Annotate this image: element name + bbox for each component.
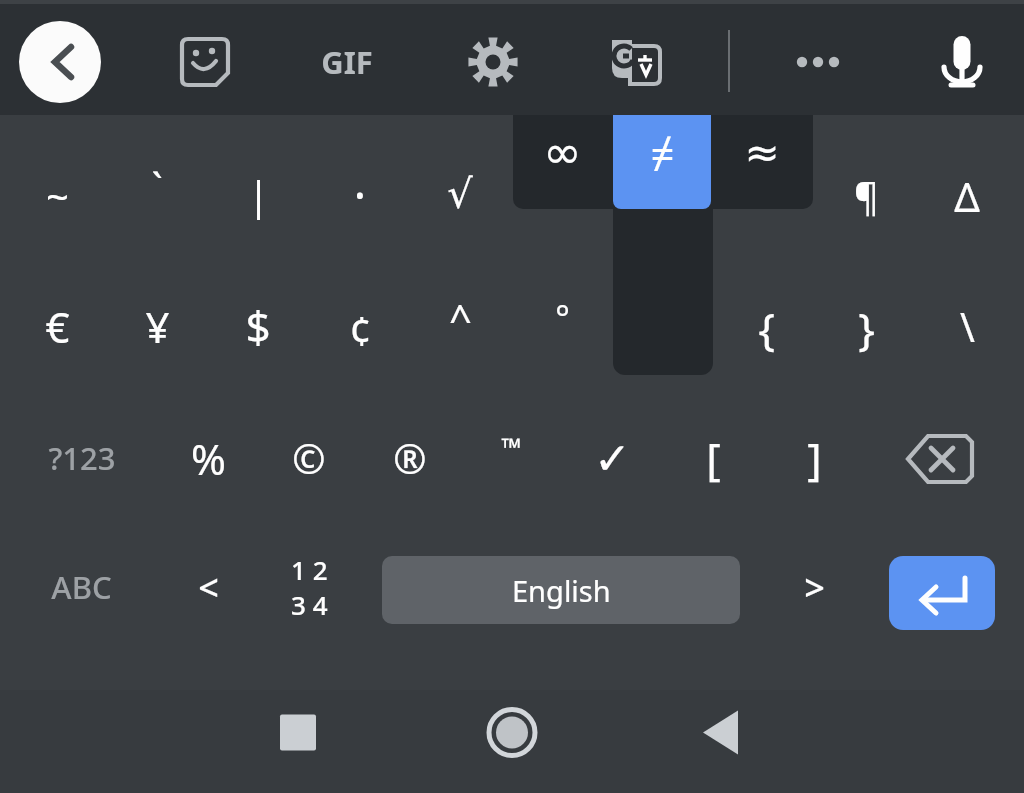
- button[interactable]: %: [138, 408, 278, 508]
- button[interactable]: €: [0, 276, 127, 376]
- button[interactable]: ≈: [714, 97, 810, 207]
- button[interactable]: Back: [19, 21, 101, 103]
- staticText: |: [247, 167, 270, 221]
- button[interactable]: More options: [777, 21, 859, 103]
- staticText: ¢: [349, 303, 372, 357]
- button[interactable]: {: [696, 278, 836, 378]
- staticText: >: [804, 563, 825, 612]
- button[interactable]: ^: [390, 268, 530, 368]
- button[interactable]: Settings: [452, 21, 534, 103]
- button[interactable]: ¥: [87, 276, 227, 376]
- button[interactable]: Backspace: [880, 414, 1000, 504]
- staticText: •: [355, 177, 365, 212]
- button[interactable]: |: [188, 144, 328, 244]
- button[interactable]: Translate: [595, 21, 677, 103]
- staticText: ∞: [543, 125, 582, 179]
- button[interactable]: [: [643, 408, 783, 508]
- button[interactable]: ]: [744, 408, 884, 508]
- button[interactable]: Enter: [889, 556, 995, 630]
- staticText: ✓: [594, 433, 631, 484]
- staticText: €: [45, 298, 70, 355]
- button[interactable]: °: [492, 268, 632, 368]
- button[interactable]: Recent apps: [243, 681, 353, 784]
- staticText: √: [447, 171, 473, 218]
- button[interactable]: •: [290, 144, 430, 244]
- staticText: GIF: [321, 41, 373, 83]
- button[interactable]: ™: [441, 396, 581, 496]
- staticText: ?123: [48, 437, 116, 479]
- staticText: ¥: [145, 298, 170, 355]
- button[interactable]: \: [897, 276, 1024, 376]
- button[interactable]: √: [390, 144, 530, 244]
- button[interactable]: <: [138, 537, 278, 637]
- button[interactable]: [613, 88, 711, 209]
- button[interactable]: >: [744, 537, 884, 637]
- button[interactable]: English: [382, 556, 740, 624]
- button[interactable]: Δ: [897, 146, 1024, 246]
- button[interactable]: ©: [239, 408, 379, 508]
- staticText: $: [245, 296, 271, 356]
- button[interactable]: ¢: [290, 280, 430, 380]
- staticText: ~: [46, 169, 69, 223]
- button[interactable]: Back: [667, 681, 777, 784]
- staticText: %: [191, 430, 226, 487]
- button[interactable]: ¶: [796, 146, 936, 246]
- staticText: ABC: [51, 566, 112, 608]
- staticText: ¶: [854, 170, 879, 222]
- staticText: ≠: [650, 124, 675, 181]
- staticText: ]: [807, 428, 822, 488]
- button[interactable]: GIF: [292, 22, 402, 102]
- button[interactable]: }: [796, 278, 936, 378]
- staticText: ^: [449, 291, 472, 345]
- button[interactable]: `: [87, 136, 227, 236]
- button[interactable]: Home: [457, 681, 567, 784]
- button[interactable]: Voice input: [921, 21, 1003, 103]
- button[interactable]: ✓: [542, 408, 682, 508]
- button[interactable]: ~: [0, 146, 127, 246]
- staticText: °: [555, 295, 570, 341]
- button[interactable]: ?123: [7, 408, 157, 508]
- staticText: ®: [393, 431, 427, 485]
- button[interactable]: ABC: [6, 537, 156, 637]
- staticText: <: [198, 563, 219, 612]
- staticText: English: [512, 571, 611, 610]
- staticText: 3 4: [291, 587, 328, 622]
- staticText: ™: [501, 429, 522, 464]
- staticText: \: [960, 299, 975, 353]
- button[interactable]: ®: [340, 408, 480, 508]
- button[interactable]: ∞: [514, 97, 610, 207]
- button[interactable]: $: [188, 276, 328, 376]
- staticText: }: [858, 298, 875, 358]
- staticText: 1 2: [291, 552, 328, 587]
- button[interactable]: 1 2: [239, 537, 379, 637]
- staticText: ≈: [744, 128, 780, 177]
- staticText: ©: [292, 431, 326, 485]
- staticText: Δ: [954, 169, 980, 223]
- staticText: `: [151, 159, 163, 213]
- staticText: [: [706, 428, 721, 488]
- button[interactable]: Stickers: [164, 21, 246, 103]
- staticText: {: [758, 298, 775, 358]
